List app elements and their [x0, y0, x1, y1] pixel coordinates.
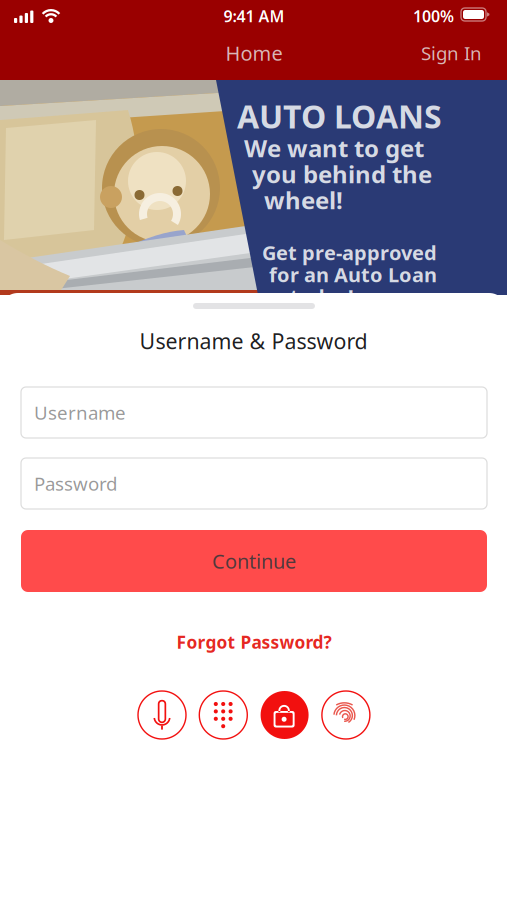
staticText: 100% [413, 5, 454, 27]
staticText: Home [225, 40, 282, 66]
staticText: Sign In [421, 41, 482, 65]
staticText: AUTO LOANS [237, 95, 442, 137]
button[interactable]: Sign In [382, 30, 482, 76]
staticText: We want to get [244, 132, 424, 164]
button[interactable]: Voice sign in [138, 691, 186, 739]
staticText: you behind the [252, 158, 432, 190]
button[interactable]: Forgot Password? [144, 626, 364, 658]
button[interactable]: Passcode [261, 691, 309, 739]
button[interactable]: Username [21, 387, 487, 438]
staticText: Forgot Password? [176, 630, 331, 653]
button[interactable]: Keypad [199, 691, 247, 739]
staticText: wheel! [264, 184, 343, 216]
staticText: 9:41 AM [223, 5, 284, 27]
button[interactable]: Touch ID [322, 691, 370, 739]
staticText: Get pre-approved [262, 239, 437, 266]
button[interactable]: Password [21, 458, 487, 509]
staticText: Username & Password [139, 327, 367, 355]
staticText: Continue [212, 548, 296, 574]
button[interactable]: Home [184, 30, 324, 76]
button[interactable]: Continue [21, 530, 487, 592]
staticText: today! [290, 283, 354, 310]
staticText: Password [34, 471, 117, 496]
staticText: Username [34, 400, 126, 425]
staticText: for an Auto Loan [269, 261, 437, 288]
